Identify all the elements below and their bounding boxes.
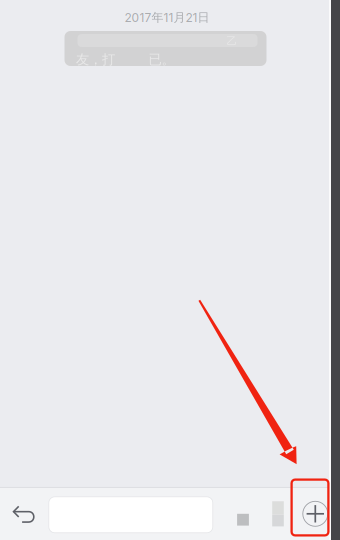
staticText: 友，打 <box>76 51 115 68</box>
button[interactable]: Back <box>4 491 42 537</box>
staticText: 2017年11月21日 <box>124 10 209 25</box>
staticText: 乙 <box>227 34 238 47</box>
button[interactable]: More <box>298 491 332 537</box>
staticText: 已。 <box>148 51 174 68</box>
